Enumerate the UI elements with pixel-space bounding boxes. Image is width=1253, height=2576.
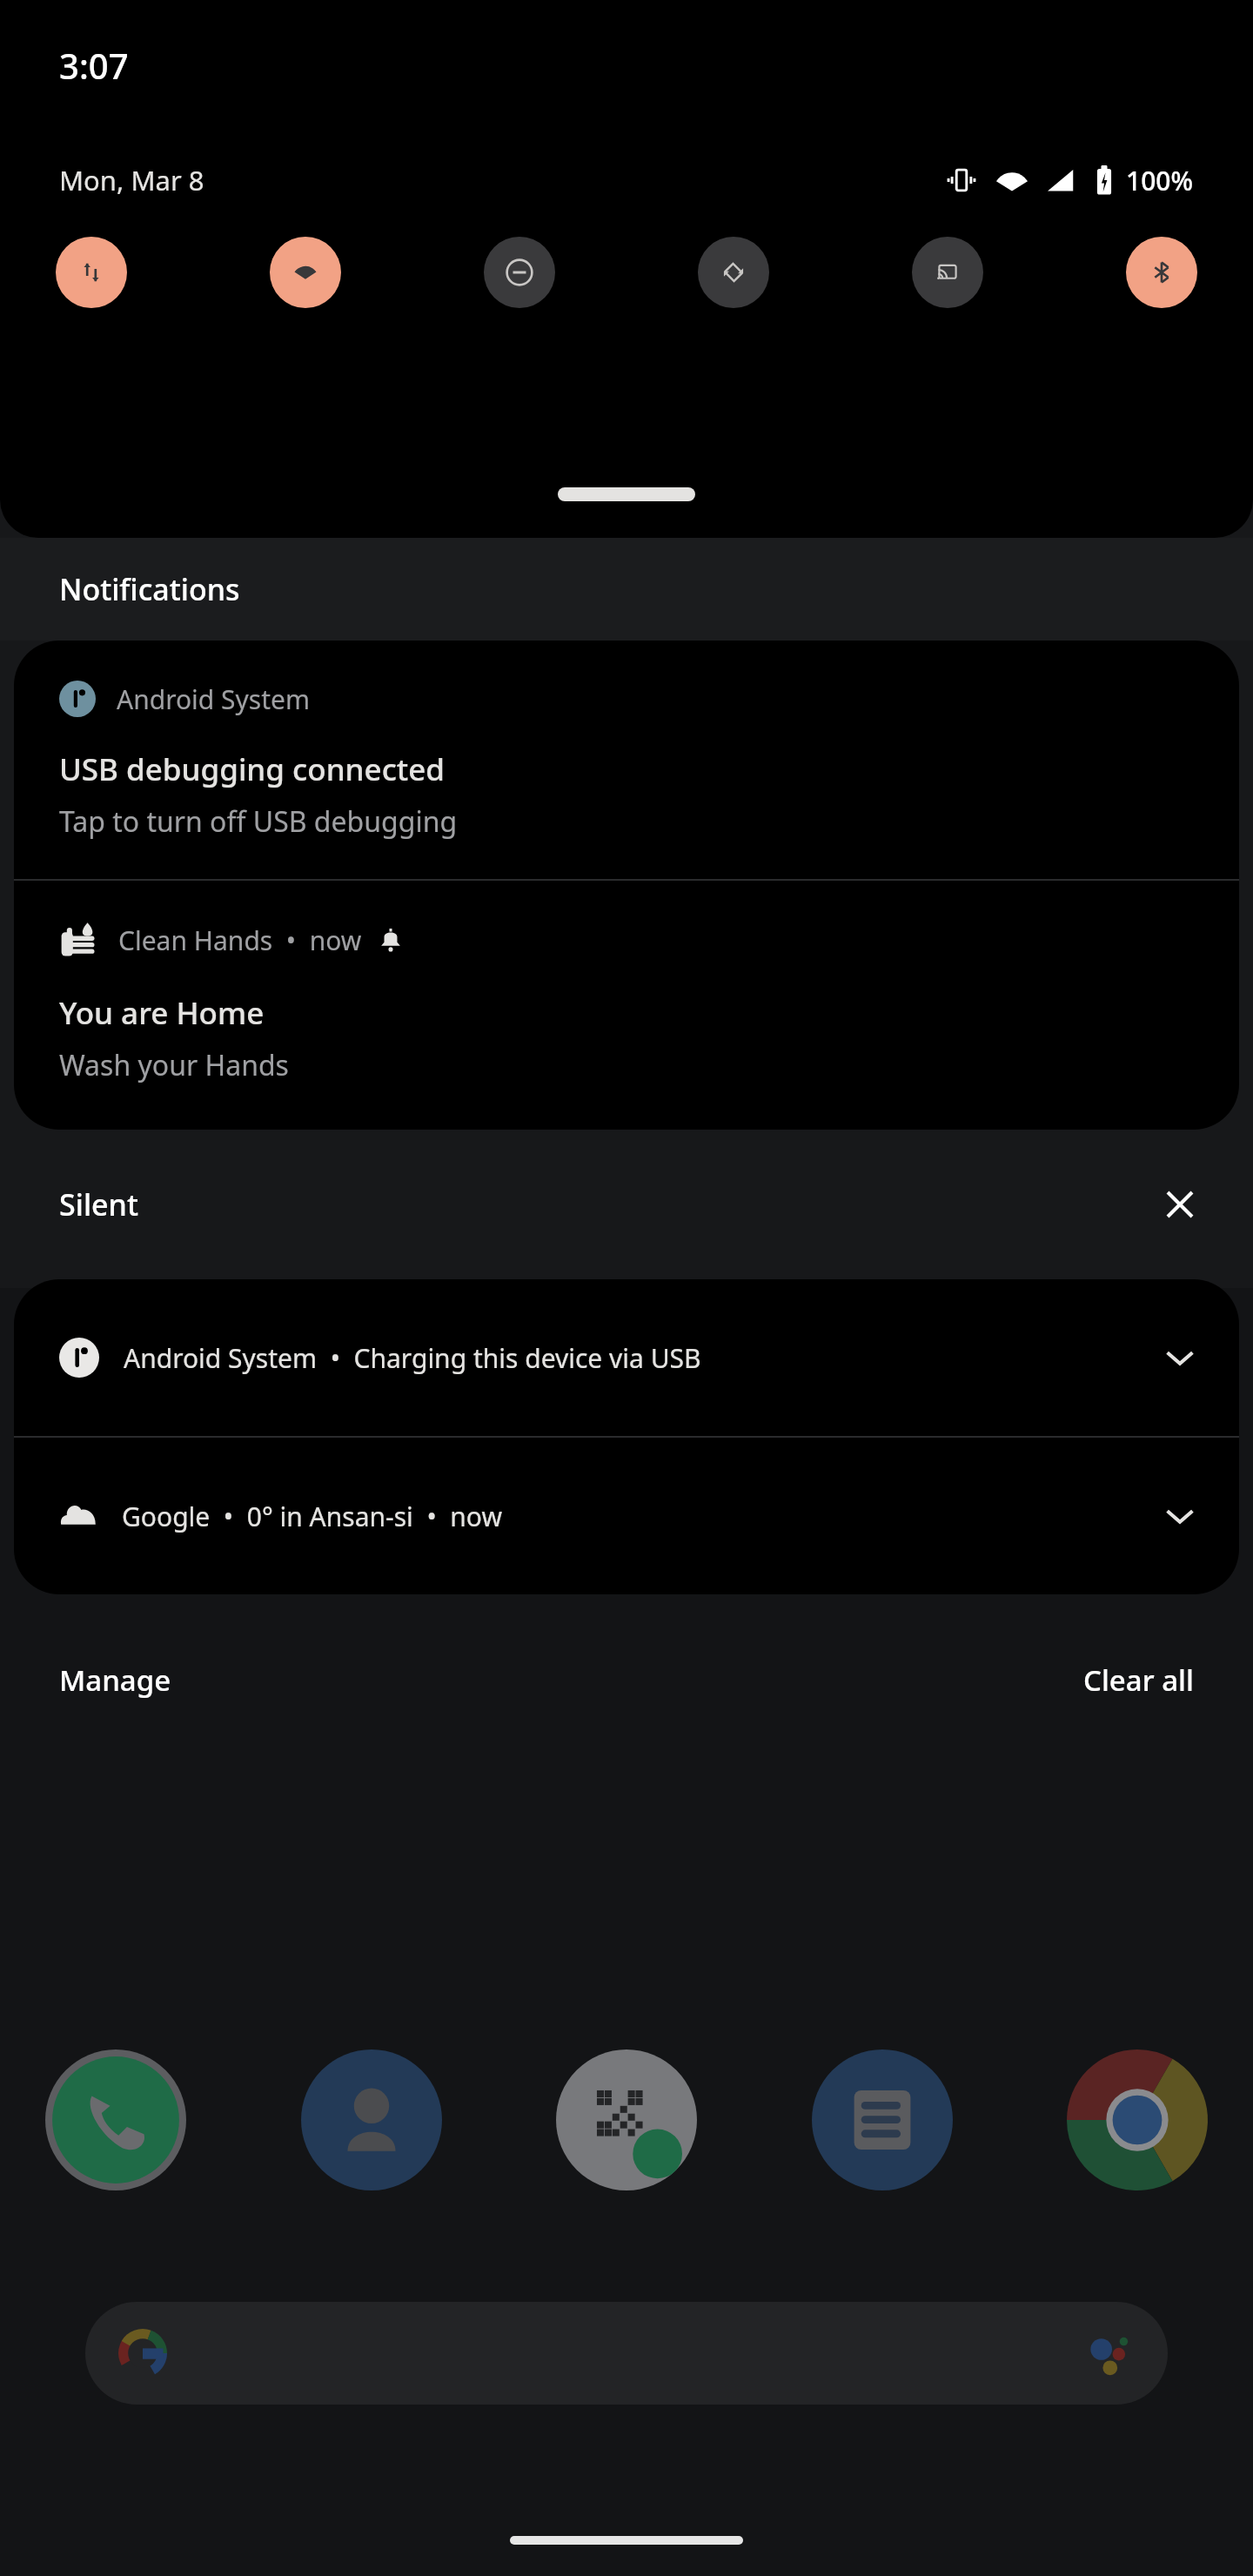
button[interactable]: Chrome: [1067, 2049, 1208, 2190]
button[interactable]: Bluetooth: [1126, 237, 1197, 308]
button[interactable]: Search: [85, 2302, 1168, 2405]
staticText: Notifications: [59, 569, 240, 609]
button[interactable]: Do Not Disturb: [484, 237, 555, 308]
button[interactable]: Messages: [812, 2049, 953, 2190]
button[interactable]: Photos: [548, 1336, 705, 1469]
staticText: USB debugging connected: [59, 748, 446, 790]
button[interactable]: Tasks: [31, 1336, 188, 1469]
button[interactable]: Internet: [56, 237, 127, 308]
button[interactable]: Screen Cast: [912, 237, 983, 308]
button[interactable]: Manage: [40, 1648, 191, 1712]
staticText: 100%: [1126, 163, 1194, 198]
button[interactable]: Clean Hands • now: [14, 881, 1239, 1130]
button[interactable]: Scanner: [556, 2049, 697, 2190]
staticText: Clear all: [1083, 1660, 1194, 1700]
button[interactable]: Clear silent notifications: [1154, 1178, 1206, 1231]
button[interactable]: Android System • Charging this device vi…: [14, 1279, 1239, 1436]
button[interactable]: Contacts: [301, 2049, 442, 2190]
button[interactable]: Google • 0° in Ansan-si • now: [14, 1438, 1239, 1594]
button[interactable]: Play Store: [1065, 1336, 1222, 1469]
button[interactable]: Android System: [14, 641, 1239, 879]
button[interactable]: Auto-rotate: [698, 237, 769, 308]
staticText: Google • 0° in Ansan-si • now: [122, 1499, 502, 1534]
staticText: Android System • Charging this device vi…: [124, 1340, 701, 1376]
button[interactable]: Expand quick settings: [558, 487, 695, 501]
staticText: 3:07: [59, 42, 129, 89]
button[interactable]: Wi-Fi: [270, 237, 341, 308]
staticText: Android System: [117, 681, 311, 717]
staticText: You are Home: [59, 992, 265, 1034]
button[interactable]: Phone: [45, 2049, 186, 2190]
staticText: Tap to turn off USB debugging: [59, 802, 458, 841]
staticText: Silent: [59, 1184, 138, 1224]
button[interactable]: Clear all: [1064, 1648, 1213, 1712]
staticText: Manage: [59, 1660, 171, 1700]
staticText: Clean Hands • now: [118, 922, 362, 958]
staticText: Mon, Mar 8: [59, 162, 204, 198]
staticText: Wash your Hands: [59, 1046, 289, 1084]
